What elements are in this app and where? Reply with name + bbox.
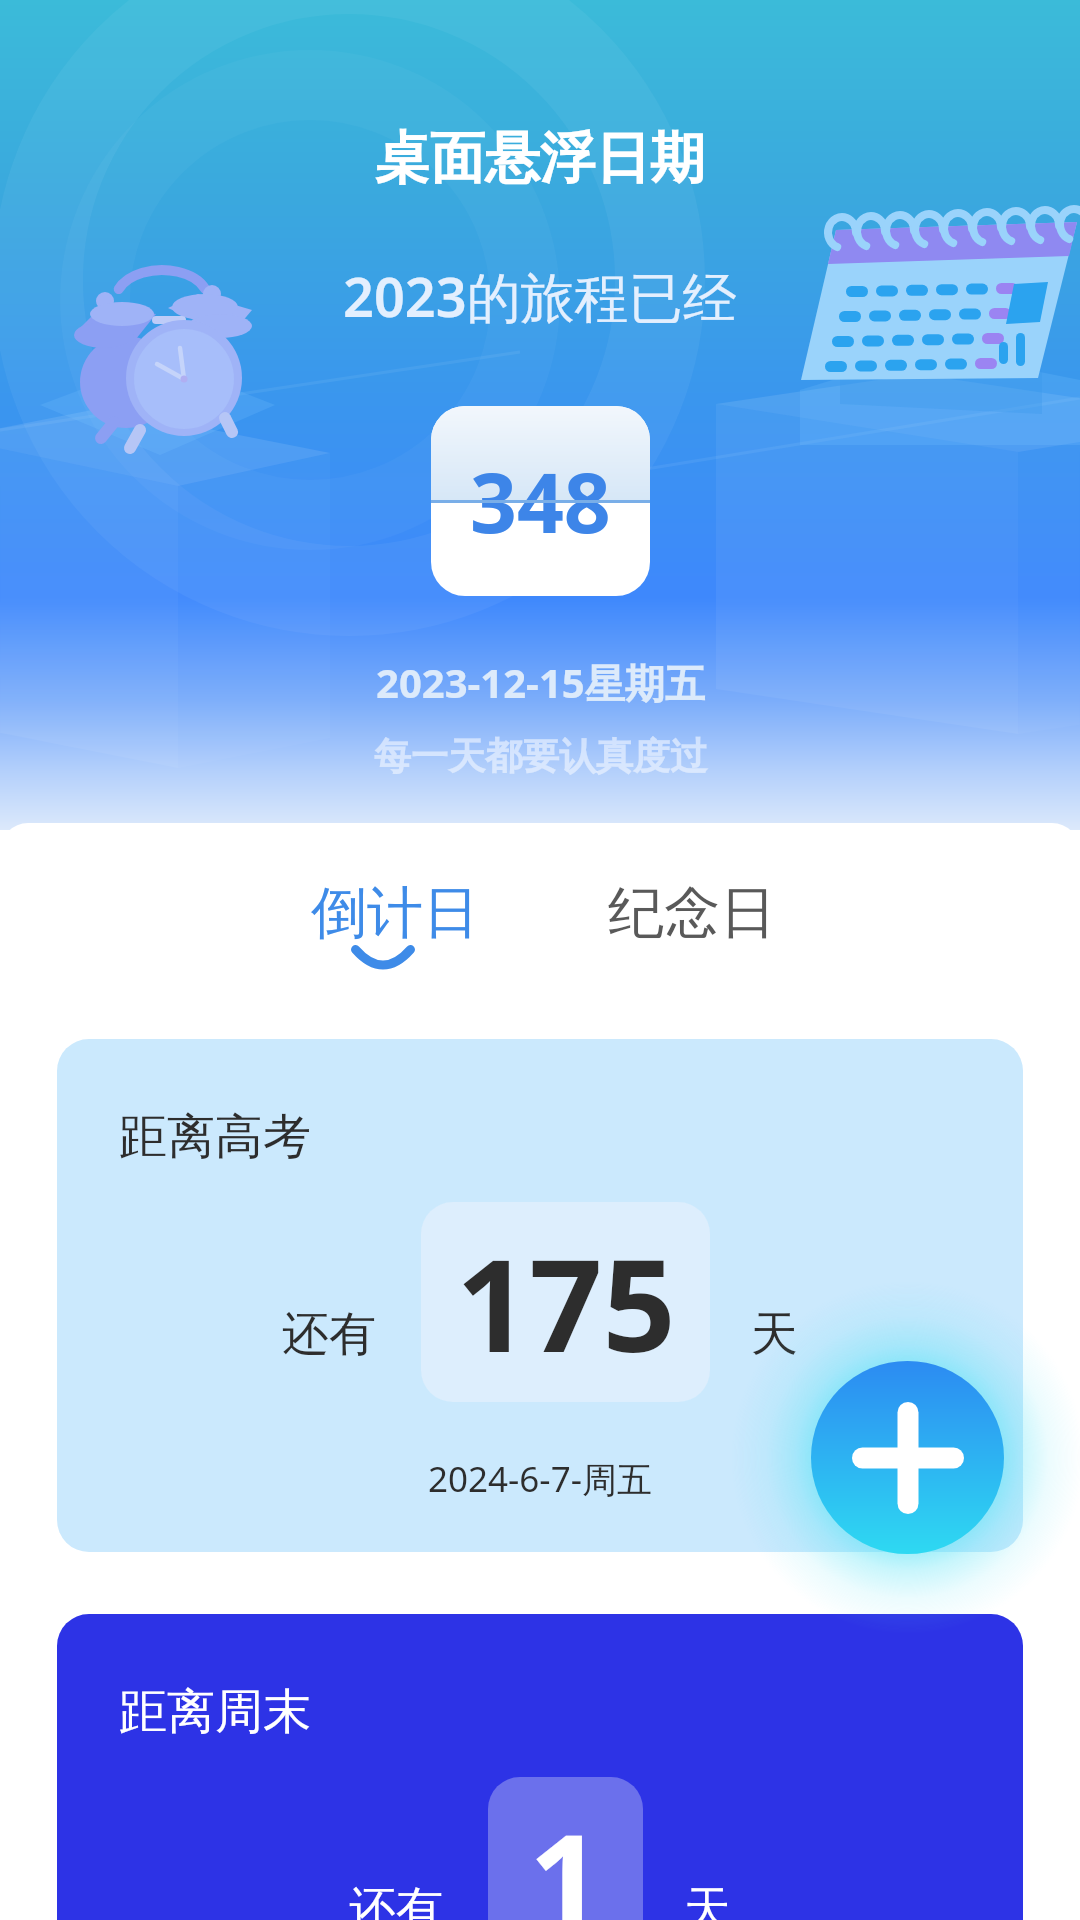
staticText: 1	[529, 1790, 603, 1920]
staticText: 还有	[282, 1305, 376, 1364]
staticText: 还有	[349, 1880, 443, 1920]
staticText: 2023的旅程已经	[343, 259, 737, 333]
staticText: 倒计日	[311, 878, 479, 949]
button[interactable]: 距离高考	[57, 1039, 1023, 1552]
staticText: 纪念日	[608, 878, 776, 949]
staticText: 距离高考	[119, 1107, 311, 1167]
staticText: 天	[751, 1305, 798, 1364]
staticText: 距离周末	[119, 1682, 311, 1742]
button[interactable]: 距离周末	[57, 1614, 1023, 1920]
staticText: 2023-12-15星期五	[376, 655, 705, 710]
staticText: 每一天都要认真度过	[374, 733, 707, 780]
staticText: 348	[470, 445, 611, 557]
button[interactable]: 倒计日	[245, 823, 545, 1039]
staticText: 2024-6-7-周五	[428, 1455, 652, 1503]
staticText: 天	[684, 1880, 731, 1920]
button[interactable]: 纪念日	[542, 823, 842, 1039]
button[interactable]: Add countdown	[811, 1361, 1004, 1554]
staticText: 175	[456, 1215, 676, 1389]
staticText: 桌面悬浮日期	[375, 124, 705, 193]
